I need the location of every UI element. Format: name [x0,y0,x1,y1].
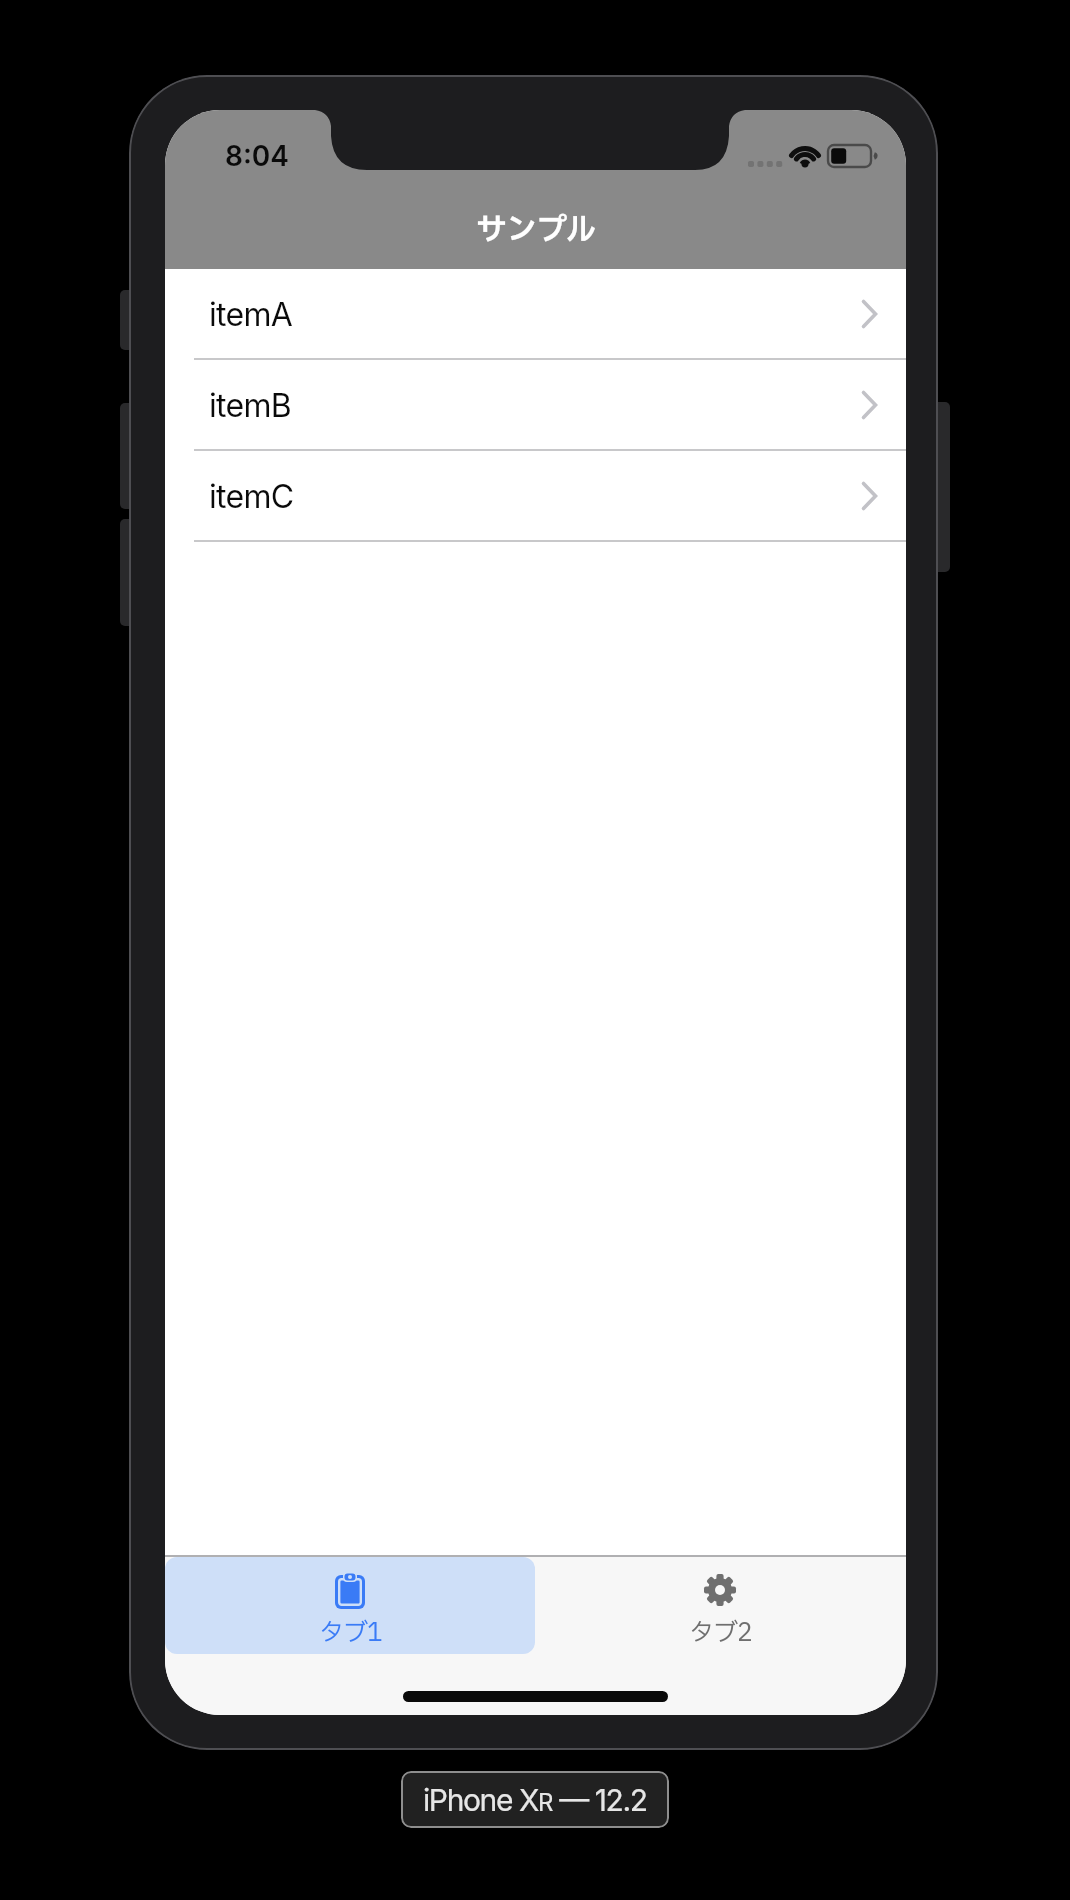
button[interactable] [535,1557,906,1654]
button[interactable]: itemA [165,269,906,360]
staticText: itemA [209,295,293,334]
button[interactable]: itemB [165,360,906,451]
staticText: 8:04 [225,139,289,173]
staticText: iPhone XR — 12.2 [423,1782,647,1818]
staticText: タブ1 [319,1615,382,1649]
staticText: サンプル [476,207,596,249]
button[interactable]: itemC [165,451,906,542]
staticText: itemB [209,386,292,425]
staticText: itemC [209,477,294,516]
button[interactable] [165,1557,535,1654]
staticText: タブ2 [689,1615,752,1649]
